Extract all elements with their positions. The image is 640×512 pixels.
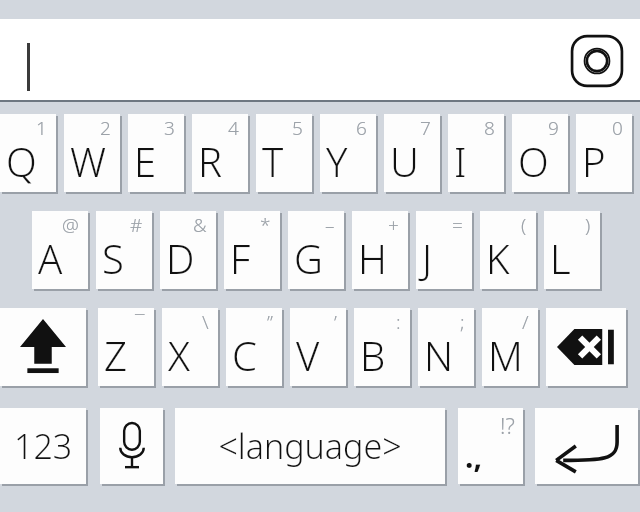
button[interactable]: !? — [458, 408, 525, 486]
button[interactable]: – — [288, 211, 346, 291]
button[interactable]: = — [416, 211, 474, 291]
staticText: 2 — [100, 115, 111, 141]
staticText: C — [232, 328, 257, 382]
staticText: @ — [62, 212, 79, 238]
staticText: E — [134, 134, 157, 188]
staticText: R — [198, 134, 222, 188]
button[interactable]: \ — [162, 308, 220, 388]
staticText: W — [70, 134, 106, 188]
staticText: = — [452, 212, 463, 238]
button[interactable]: Voice input — [0, 19, 640, 102]
staticText: S — [102, 231, 124, 285]
button[interactable]: # — [96, 211, 154, 291]
staticText: ’ — [334, 309, 337, 335]
button[interactable]: 1 — [0, 114, 58, 194]
staticText: 7 — [420, 115, 431, 141]
staticText: U — [390, 134, 419, 188]
staticText: P — [582, 134, 606, 188]
button[interactable]: Voice typing — [100, 408, 165, 486]
button[interactable]: ’ — [290, 308, 348, 388]
staticText: 6 — [356, 115, 367, 141]
staticText: 9 — [548, 115, 559, 141]
button[interactable]: ) — [544, 211, 602, 291]
staticText: V — [296, 328, 320, 382]
button[interactable]: & — [160, 211, 218, 291]
button[interactable]: @ — [32, 211, 90, 291]
staticText: ( — [521, 212, 527, 238]
button[interactable]: 9 — [512, 114, 570, 194]
button[interactable]: <language> — [175, 408, 447, 486]
staticText: 5 — [292, 115, 303, 141]
staticText: ” — [267, 309, 273, 335]
staticText: 8 — [484, 115, 495, 141]
staticText: O — [518, 134, 549, 188]
button[interactable]: ‾ — [98, 308, 156, 388]
staticText: M — [488, 328, 523, 382]
button[interactable]: 2 — [64, 114, 122, 194]
button[interactable]: 0 — [576, 114, 634, 194]
staticText: B — [360, 328, 386, 382]
staticText: D — [166, 231, 195, 285]
staticText: X — [168, 328, 190, 382]
staticText: I — [454, 134, 467, 188]
staticText: <language> — [218, 423, 402, 469]
staticText: G — [294, 231, 323, 285]
staticText: * — [260, 212, 271, 238]
staticText: – — [325, 212, 335, 238]
staticText: A — [38, 231, 63, 285]
staticText: L — [550, 231, 571, 285]
button[interactable]: 8 — [448, 114, 506, 194]
button[interactable]: 123 — [0, 408, 88, 486]
staticText: ‾ — [135, 309, 145, 335]
staticText: 1 — [36, 115, 47, 141]
button[interactable]: ( — [480, 211, 538, 291]
staticText: + — [388, 212, 399, 238]
staticText: / — [522, 309, 529, 335]
staticText: # — [130, 212, 143, 238]
button[interactable]: 4 — [192, 114, 250, 194]
button[interactable]: Backspace — [546, 308, 628, 388]
staticText: ., — [465, 436, 482, 477]
staticText: & — [193, 212, 207, 238]
staticText: 0 — [612, 115, 623, 141]
staticText: : — [396, 309, 401, 335]
button[interactable]: 5 — [256, 114, 314, 194]
staticText: H — [358, 231, 387, 285]
button[interactable]: Voice input — [568, 32, 626, 90]
staticText: F — [230, 231, 251, 285]
staticText: Z — [104, 328, 127, 382]
staticText: Q — [6, 134, 37, 188]
staticText: !? — [500, 410, 515, 440]
button[interactable]: 7 — [384, 114, 442, 194]
button[interactable]: * — [224, 211, 282, 291]
staticText: 3 — [164, 115, 175, 141]
staticText: \ — [202, 309, 209, 335]
staticText: N — [424, 328, 454, 382]
button[interactable]: 3 — [128, 114, 186, 194]
button[interactable]: : — [354, 308, 412, 388]
button[interactable]: ” — [226, 308, 284, 388]
staticText: 4 — [228, 115, 239, 141]
staticText: T — [262, 134, 284, 188]
button[interactable]: Shift — [0, 308, 88, 388]
staticText: K — [486, 231, 510, 285]
staticText: ) — [585, 212, 591, 238]
button[interactable]: / — [482, 308, 540, 388]
button[interactable]: + — [352, 211, 410, 291]
button[interactable]: ; — [418, 308, 476, 388]
button[interactable]: 6 — [320, 114, 378, 194]
button[interactable]: Enter — [535, 408, 640, 486]
staticText: ; — [460, 309, 465, 335]
staticText: J — [422, 231, 433, 285]
staticText: 123 — [14, 423, 73, 469]
staticText: Y — [326, 134, 348, 188]
